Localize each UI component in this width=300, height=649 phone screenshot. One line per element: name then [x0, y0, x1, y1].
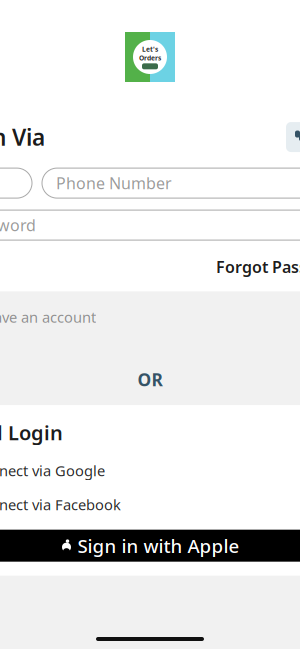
staticText: Connect via Facebook [0, 495, 121, 514]
staticText: Social Login [0, 419, 63, 446]
staticText: Dont't have an account [0, 307, 96, 327]
button[interactable]: Login with phone [286, 122, 300, 152]
button[interactable]: Password [0, 210, 300, 240]
staticText: Password [0, 214, 36, 236]
staticText: Phone Number [56, 172, 172, 194]
button[interactable]: +91 [0, 168, 32, 198]
button[interactable]: Forgot Password? [216, 256, 300, 277]
staticText: Sign in with Apple [77, 533, 239, 558]
staticText: OR [137, 368, 162, 391]
staticText: Connect via Google [0, 461, 105, 480]
button[interactable]: Phone Number [42, 168, 300, 198]
staticText: Let's [142, 45, 158, 53]
button[interactable]: Connect via Google [0, 446, 300, 484]
staticText: Login Via [0, 122, 45, 152]
staticText: Forgot Password? [216, 256, 300, 277]
button[interactable]: Connect via Facebook [0, 484, 300, 518]
staticText: Orders [139, 53, 161, 62]
button[interactable]: Sign in with Apple [0, 530, 300, 562]
